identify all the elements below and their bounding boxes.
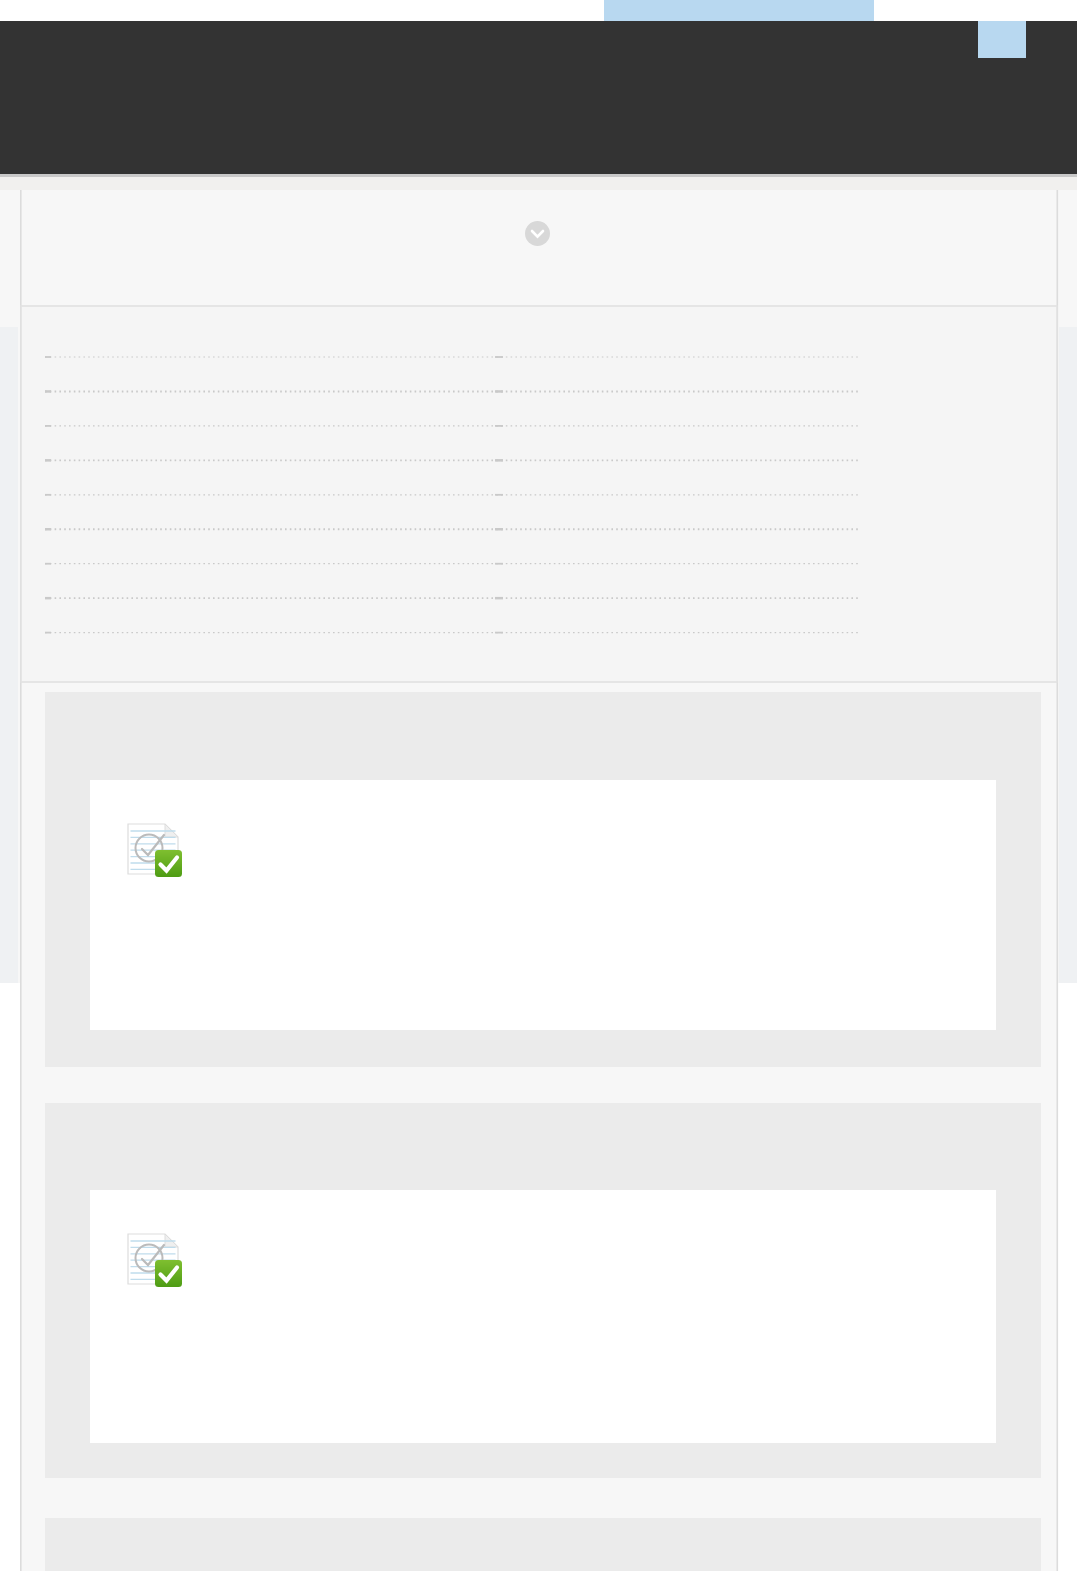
button[interactable]: Task item 2: [45, 1103, 1041, 1478]
button[interactable]: Note: [21, 306, 1057, 682]
button[interactable]: Task item 1: [45, 692, 1041, 1067]
button[interactable]: Expand: [525, 221, 550, 246]
